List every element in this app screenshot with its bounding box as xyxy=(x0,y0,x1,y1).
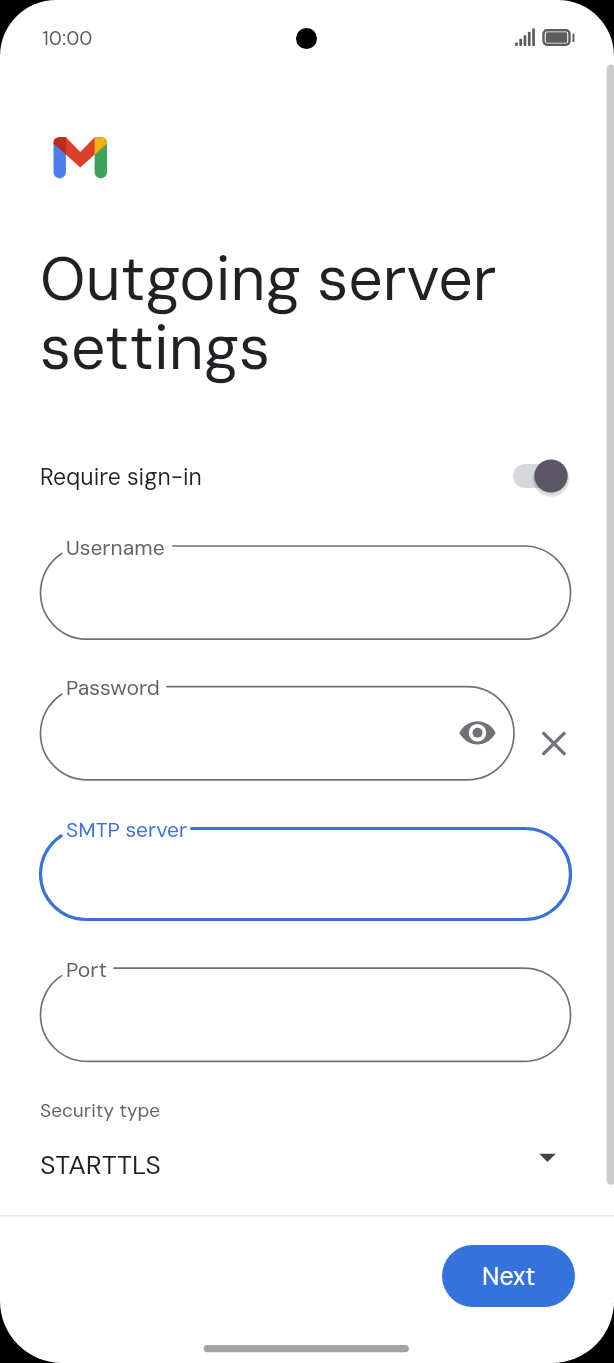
staticText: STARTTLS xyxy=(40,1148,161,1183)
staticText: Password xyxy=(66,674,160,701)
staticText: Next xyxy=(482,1260,536,1293)
staticText: Port xyxy=(66,956,107,983)
staticText: Require sign-in xyxy=(40,462,202,492)
staticText: SMTP server xyxy=(66,816,188,843)
staticText: 10:00 xyxy=(42,25,93,51)
button[interactable]: Next xyxy=(442,1245,575,1307)
staticText: Security type xyxy=(40,1098,161,1123)
button[interactable]: STARTTLS xyxy=(0,1134,614,1196)
staticText: Username xyxy=(66,534,165,561)
staticText: Outgoing server settings xyxy=(40,239,497,388)
button[interactable]: Require sign-in xyxy=(0,446,614,508)
